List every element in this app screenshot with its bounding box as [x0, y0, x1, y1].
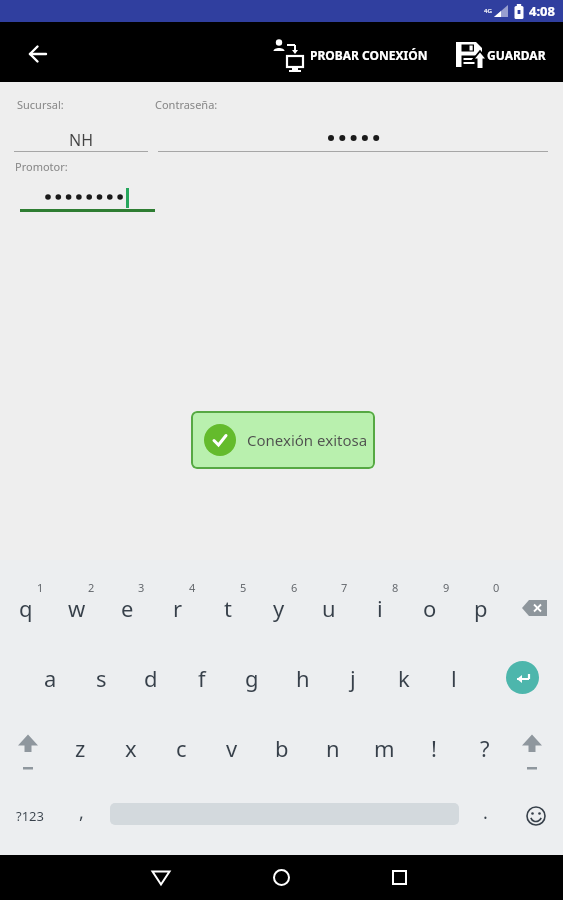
staticText: z	[75, 733, 86, 763]
staticText: k	[398, 663, 410, 693]
button[interactable]	[137, 855, 185, 900]
staticText: a	[44, 663, 57, 693]
button[interactable]: ?	[460, 724, 510, 772]
button[interactable]: ?123	[5, 792, 55, 840]
staticText: n	[326, 733, 340, 763]
button[interactable]: w	[52, 584, 102, 632]
button[interactable]: k	[379, 654, 429, 702]
staticText: Conexión exitosa	[247, 430, 368, 450]
button[interactable]: r	[153, 584, 203, 632]
staticText: 8	[392, 580, 399, 595]
staticText: 7	[341, 580, 348, 595]
staticText: t	[224, 593, 232, 623]
staticText: NH	[69, 129, 94, 151]
button[interactable]	[257, 855, 305, 900]
staticText: ,	[79, 800, 84, 825]
button[interactable]: s	[76, 654, 126, 702]
staticText: d	[144, 663, 158, 693]
staticText: PROBAR CONEXIÓN	[310, 47, 428, 63]
button[interactable]: ,	[56, 788, 106, 836]
staticText: e	[121, 593, 134, 623]
staticText: r	[173, 593, 183, 623]
staticText: x	[125, 733, 137, 763]
staticText: s	[96, 663, 107, 693]
staticText: 1	[37, 580, 44, 595]
button[interactable]: x	[106, 724, 156, 772]
button[interactable]: h	[278, 654, 328, 702]
button[interactable]: d	[126, 654, 176, 702]
button[interactable]: f	[177, 654, 227, 702]
staticText: 5	[240, 580, 247, 595]
staticText: 4	[189, 580, 196, 595]
button[interactable]: !	[409, 724, 459, 772]
button[interactable]: l	[429, 654, 479, 702]
button[interactable]: o	[405, 584, 455, 632]
button[interactable]	[507, 722, 557, 770]
button[interactable]: z	[55, 724, 105, 772]
staticText: Promotor:	[15, 159, 68, 174]
staticText: 0	[493, 580, 500, 595]
button[interactable]	[22, 38, 54, 70]
button[interactable]: u	[304, 584, 354, 632]
button[interactable]: b	[257, 724, 307, 772]
button[interactable]: c	[156, 724, 206, 772]
button[interactable]: v	[207, 724, 257, 772]
button[interactable]: q	[1, 584, 51, 632]
button[interactable]	[510, 584, 560, 632]
staticText: u	[322, 593, 336, 623]
staticText: !	[431, 733, 437, 763]
staticText: .	[483, 800, 488, 825]
staticText: ?123	[16, 807, 44, 825]
staticText: p	[474, 593, 488, 623]
button[interactable]: .	[460, 788, 510, 836]
button[interactable]: PROBAR CONEXIÓN	[272, 37, 428, 73]
button[interactable]: GUARDAR	[455, 40, 546, 70]
staticText: 9	[443, 580, 450, 595]
button[interactable]: a	[25, 654, 75, 702]
staticText: y	[273, 593, 285, 623]
staticText: i	[377, 593, 383, 623]
staticText: f	[198, 663, 206, 693]
staticText: j	[350, 663, 356, 693]
staticText: o	[423, 593, 437, 623]
staticText: Contraseña:	[155, 97, 218, 112]
button[interactable]	[375, 855, 423, 900]
button[interactable]: g	[227, 654, 277, 702]
button[interactable]: y	[254, 584, 304, 632]
staticText: m	[374, 733, 395, 763]
staticText: 4G	[484, 7, 492, 15]
staticText: q	[19, 593, 33, 623]
button[interactable]	[497, 653, 547, 701]
staticText: g	[245, 663, 259, 693]
button[interactable]: j	[328, 654, 378, 702]
button[interactable]: e	[102, 584, 152, 632]
staticText: b	[275, 733, 289, 763]
staticText: h	[296, 663, 310, 693]
staticText: ?	[480, 733, 490, 763]
staticText: l	[451, 663, 457, 693]
button[interactable]: m	[359, 724, 409, 772]
staticText: 2	[88, 580, 95, 595]
staticText: 3	[138, 580, 145, 595]
staticText: GUARDAR	[487, 47, 546, 63]
button[interactable]: p	[456, 584, 506, 632]
button[interactable]	[511, 792, 561, 840]
staticText: c	[176, 733, 187, 763]
button[interactable]: i	[355, 584, 405, 632]
button[interactable]: t	[203, 584, 253, 632]
staticText: w	[68, 593, 86, 623]
button[interactable]: n	[308, 724, 358, 772]
staticText: 4:08	[529, 2, 555, 20]
staticText: v	[226, 733, 238, 763]
button[interactable]	[3, 722, 53, 770]
staticText: 6	[291, 580, 298, 595]
staticText: Sucursal:	[17, 97, 64, 112]
